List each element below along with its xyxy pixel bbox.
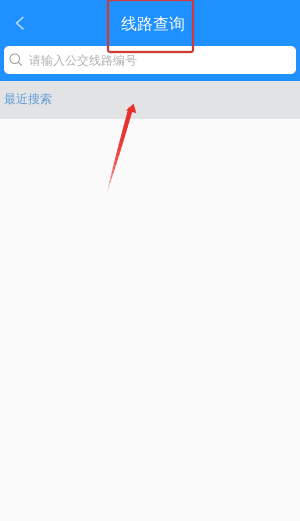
staticText: 最近搜索 — [4, 92, 52, 106]
staticText: 线路查询 — [121, 14, 185, 34]
button[interactable]: Back — [0, 7, 36, 39]
staticText: 请输入公交线路编号 — [29, 53, 137, 68]
button[interactable]: 请输入公交线路编号 — [4, 46, 296, 74]
